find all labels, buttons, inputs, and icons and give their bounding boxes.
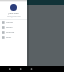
button[interactable]: Profile photo (10, 4, 17, 11)
staticText: Jane Doe (8, 11, 19, 14)
button[interactable]: Home (0, 20, 27, 25)
button[interactable]: Starred (0, 30, 27, 35)
button[interactable]: Inbox (0, 25, 27, 30)
staticText: Starred (6, 30, 15, 33)
staticText: Inbox (6, 25, 13, 28)
button[interactable]: Sent (0, 35, 27, 40)
staticText: Home (6, 20, 13, 23)
staticText: jane@mail.com (7, 15, 21, 18)
staticText: Sent (6, 35, 12, 38)
